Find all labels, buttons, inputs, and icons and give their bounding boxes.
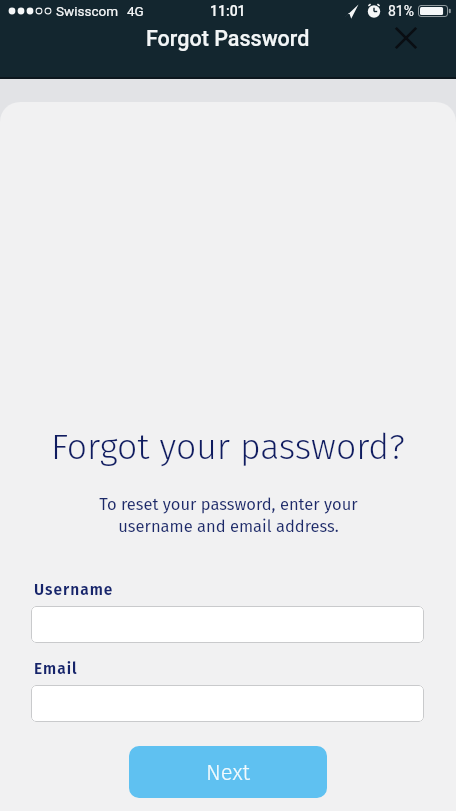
staticText: Email (34, 660, 78, 679)
staticText: To reset your password, enter your usern… (99, 495, 358, 536)
staticText: Username (34, 581, 114, 600)
staticText: 81% (388, 3, 414, 19)
button[interactable] (31, 685, 424, 722)
button[interactable] (31, 606, 424, 643)
staticText: Swisscom (56, 3, 118, 19)
staticText: 11:01 (210, 3, 246, 19)
button[interactable]: Next (129, 746, 327, 798)
staticText: Next (206, 759, 251, 785)
staticText: Forgot Password (146, 26, 310, 51)
staticText: 4G (127, 3, 144, 19)
button[interactable] (391, 23, 421, 53)
staticText: Forgot your password? (51, 426, 405, 469)
